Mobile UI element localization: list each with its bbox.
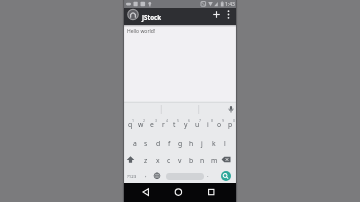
button[interactable]: e: [146, 118, 158, 130]
staticText: y: [184, 120, 188, 129]
staticText: .: [207, 171, 209, 179]
staticText: j: [201, 139, 203, 148]
staticText: 2: [143, 118, 146, 123]
staticText: u: [195, 120, 200, 129]
staticText: 7: [199, 118, 202, 123]
staticText: t: [173, 120, 176, 129]
button[interactable]: ?123: [126, 170, 138, 182]
staticText: o: [217, 120, 222, 129]
staticText: 6: [188, 118, 191, 123]
staticText: 1:43: [225, 1, 235, 8]
staticText: 4: [166, 118, 169, 123]
button[interactable]: u: [191, 118, 203, 130]
staticText: f: [168, 139, 171, 148]
button[interactable]: .: [202, 169, 214, 181]
button[interactable]: [200, 184, 216, 200]
button[interactable]: i: [202, 118, 214, 130]
button[interactable]: [138, 184, 154, 200]
staticText: 8: [211, 118, 214, 123]
button[interactable]: [221, 171, 231, 181]
button[interactable]: f: [163, 137, 175, 149]
button[interactable]: n: [196, 154, 208, 166]
button[interactable]: o: [213, 118, 225, 130]
button[interactable]: v: [174, 154, 186, 166]
staticText: 3: [155, 118, 158, 123]
staticText: d: [156, 139, 161, 148]
button[interactable]: g: [174, 137, 186, 149]
button[interactable]: d: [152, 137, 164, 149]
staticText: JStock: [142, 13, 162, 21]
staticText: s: [144, 139, 148, 148]
staticText: a: [133, 139, 137, 148]
staticText: h: [189, 139, 194, 148]
button[interactable]: m: [208, 154, 220, 166]
button[interactable]: k: [208, 137, 220, 149]
staticText: g: [178, 139, 183, 148]
staticText: 1: [132, 118, 135, 123]
button[interactable]: j: [196, 137, 208, 149]
button[interactable]: [166, 173, 204, 180]
staticText: 0: [233, 118, 236, 123]
staticText: w: [138, 120, 144, 129]
button[interactable]: z: [140, 154, 152, 166]
button[interactable]: [208, 8, 224, 25]
staticText: r: [162, 120, 165, 129]
staticText: z: [144, 156, 148, 165]
staticText: l: [224, 139, 226, 148]
button[interactable]: c: [163, 154, 175, 166]
button[interactable]: b: [185, 154, 197, 166]
button[interactable]: t: [168, 118, 180, 130]
staticText: x: [156, 156, 160, 165]
staticText: b: [189, 156, 194, 165]
button[interactable]: y: [180, 118, 192, 130]
button[interactable]: [170, 184, 186, 200]
button[interactable]: w: [135, 118, 147, 130]
staticText: q: [128, 120, 133, 129]
button[interactable]: s: [140, 137, 152, 149]
staticText: m: [211, 156, 218, 165]
staticText: ,: [145, 171, 147, 179]
button[interactable]: [124, 8, 236, 25]
button[interactable]: r: [157, 118, 169, 130]
staticText: k: [212, 139, 216, 148]
button[interactable]: q: [124, 118, 136, 130]
button[interactable]: a: [129, 137, 141, 149]
staticText: i: [207, 120, 209, 129]
button[interactable]: [223, 8, 235, 25]
staticText: e: [150, 120, 154, 129]
button[interactable]: ,: [140, 169, 152, 181]
staticText: p: [228, 120, 233, 129]
staticText: 5: [177, 118, 180, 123]
staticText: 9: [222, 118, 225, 123]
button[interactable]: p: [224, 118, 236, 130]
button[interactable]: h: [185, 137, 197, 149]
staticText: Hello world!: [127, 28, 156, 35]
staticText: v: [178, 156, 182, 165]
staticText: ?123: [127, 173, 137, 179]
button[interactable]: x: [152, 154, 164, 166]
button[interactable]: l: [219, 137, 231, 149]
staticText: n: [200, 156, 205, 165]
staticText: c: [167, 156, 171, 165]
